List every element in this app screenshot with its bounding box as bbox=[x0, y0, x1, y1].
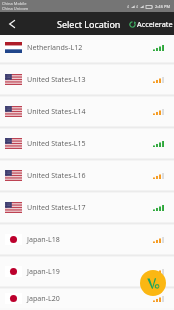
button[interactable]: United States-L14 bbox=[0, 97, 174, 126]
button[interactable]: Connect VPN bbox=[140, 270, 166, 296]
staticText: United States-L15 bbox=[27, 138, 86, 148]
button[interactable]: United States-L16 bbox=[0, 161, 174, 190]
staticText: United States-L13 bbox=[27, 74, 86, 84]
staticText: China Unicom bbox=[2, 6, 29, 11]
staticText: 4 bbox=[127, 4, 130, 9]
staticText: Select Location bbox=[57, 18, 121, 30]
button[interactable]: Japan-L18 bbox=[0, 225, 174, 254]
staticText: Japan-L18 bbox=[27, 234, 60, 244]
staticText: Japan-L19 bbox=[27, 266, 60, 276]
staticText: Accelerate bbox=[137, 19, 173, 29]
button[interactable]: United States-L15 bbox=[0, 129, 174, 158]
staticText: United States-L16 bbox=[27, 170, 86, 180]
button[interactable]: Back bbox=[1, 12, 23, 35]
button[interactable]: United States-L17 bbox=[0, 193, 174, 222]
button[interactable]: Netherlands-L12 bbox=[0, 35, 174, 62]
button[interactable]: United States-L13 bbox=[0, 65, 174, 94]
staticText: China Mobile bbox=[2, 1, 27, 6]
button[interactable]: Japan-L20 bbox=[0, 289, 174, 308]
staticText: Netherlands-L12 bbox=[27, 42, 83, 52]
staticText: United States-L17 bbox=[27, 202, 86, 212]
button[interactable]: Accelerate bbox=[126, 19, 174, 29]
staticText: 4 bbox=[136, 4, 139, 9]
staticText: 2:46 PM bbox=[155, 4, 171, 9]
button[interactable]: Japan-L19 bbox=[0, 257, 174, 286]
staticText: Japan-L20 bbox=[27, 293, 60, 303]
staticText: United States-L14 bbox=[27, 106, 86, 116]
